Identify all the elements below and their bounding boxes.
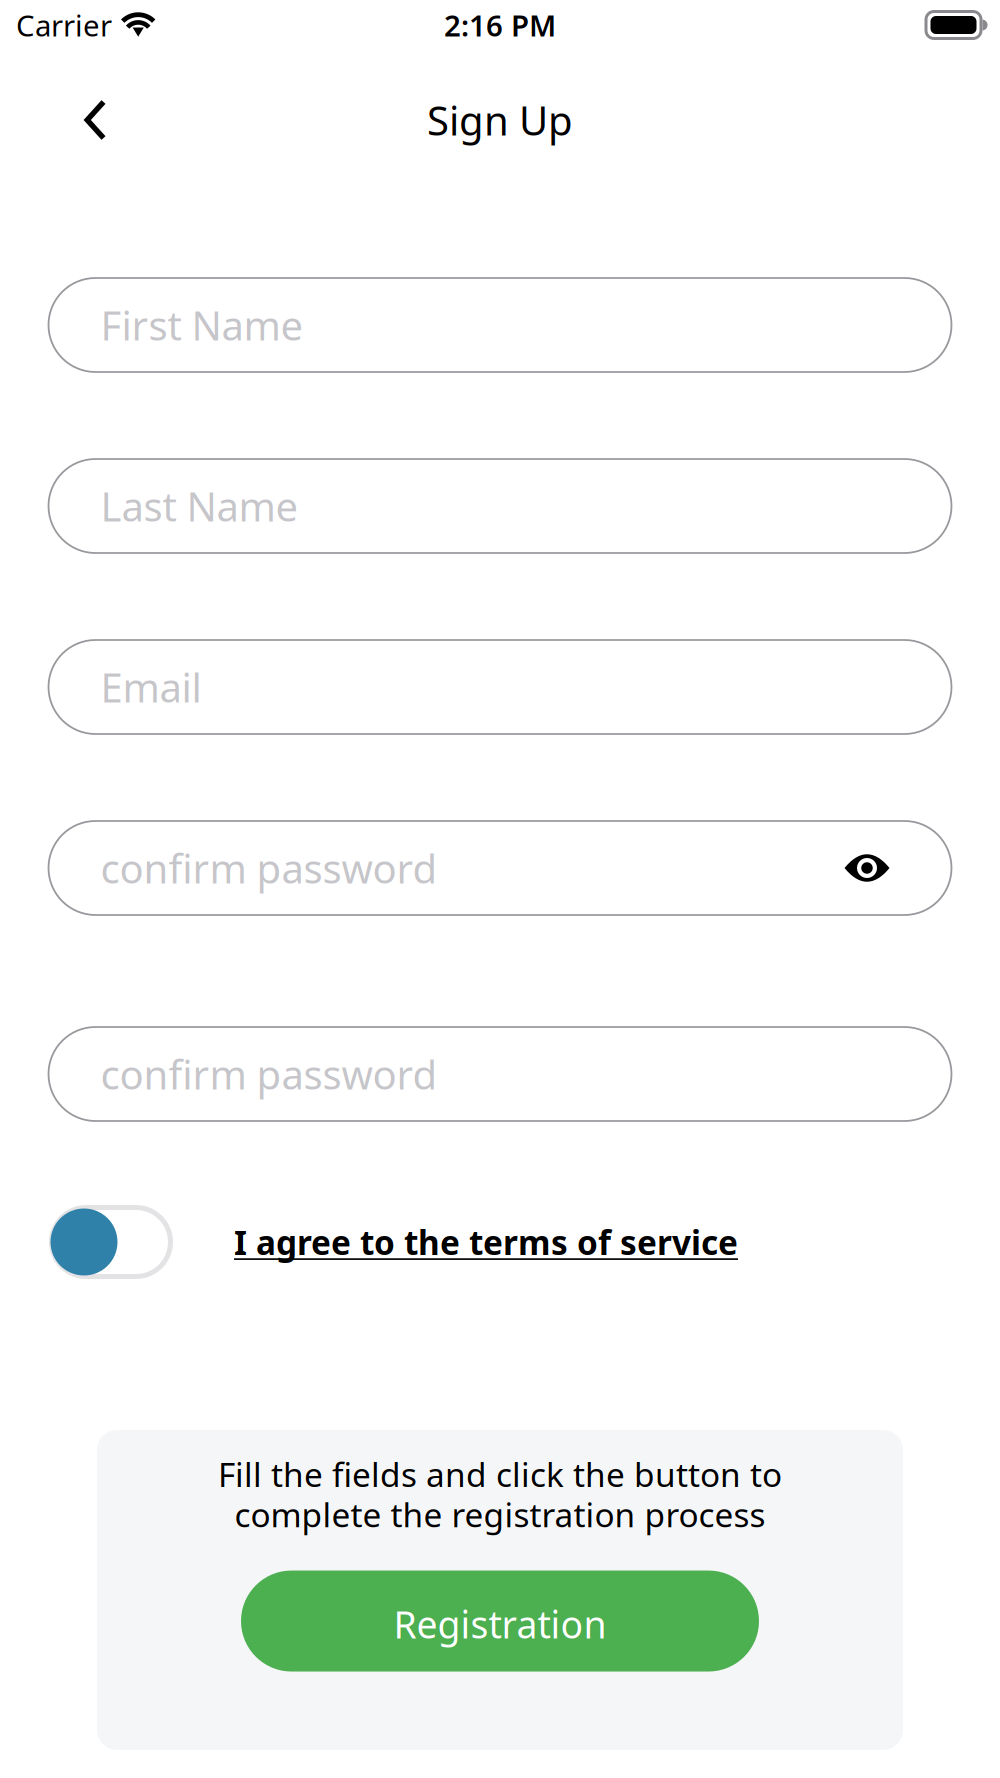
staticText: Sign Up [427,93,573,146]
staticText: Fill the fields and click the button to [218,1452,782,1496]
button[interactable]: Show password [844,852,889,883]
staticText: 2:16 PM [444,5,556,44]
button[interactable]: I agree to the terms of service [234,1220,738,1264]
staticText: complete the registration process [234,1492,765,1537]
staticText: Registration [393,1599,606,1649]
button[interactable]: confirm password [48,1027,951,1121]
staticText: I agree to the terms of service [234,1220,738,1264]
button[interactable]: First Name [48,278,951,372]
staticText: confirm password [100,1047,437,1100]
button[interactable]: Last Name [48,459,951,553]
button[interactable]: confirm password [48,821,951,915]
button[interactable]: I agree to the terms of service [49,1205,173,1279]
button[interactable]: Back [0,77,137,163]
staticText: Carrier [16,5,112,44]
staticText: Email [100,660,201,713]
staticText: First Name [100,298,303,351]
staticText: confirm password [100,841,437,894]
button[interactable]: Registration [241,1570,759,1671]
staticText: Last Name [100,479,298,532]
button[interactable]: Email [48,640,951,734]
